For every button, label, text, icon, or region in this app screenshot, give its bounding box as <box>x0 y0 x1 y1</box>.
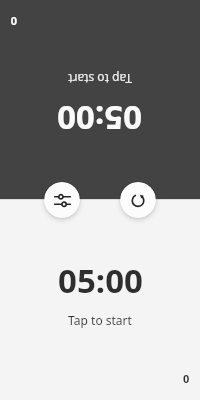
button[interactable]: Settings <box>44 182 80 218</box>
staticText: Tap to start <box>68 312 132 328</box>
button[interactable]: Reset timer <box>120 182 156 218</box>
staticText: 0 <box>183 371 190 386</box>
staticText: 05:00 <box>58 258 143 303</box>
staticText: 0 <box>10 14 17 29</box>
staticText: Tap to start <box>68 71 132 87</box>
button[interactable]: 0 <box>0 0 200 199</box>
button[interactable]: 0 <box>0 200 200 400</box>
button[interactable]: 0 <box>173 357 200 400</box>
staticText: 05:00 <box>57 96 142 141</box>
button[interactable]: 0 <box>0 0 27 43</box>
